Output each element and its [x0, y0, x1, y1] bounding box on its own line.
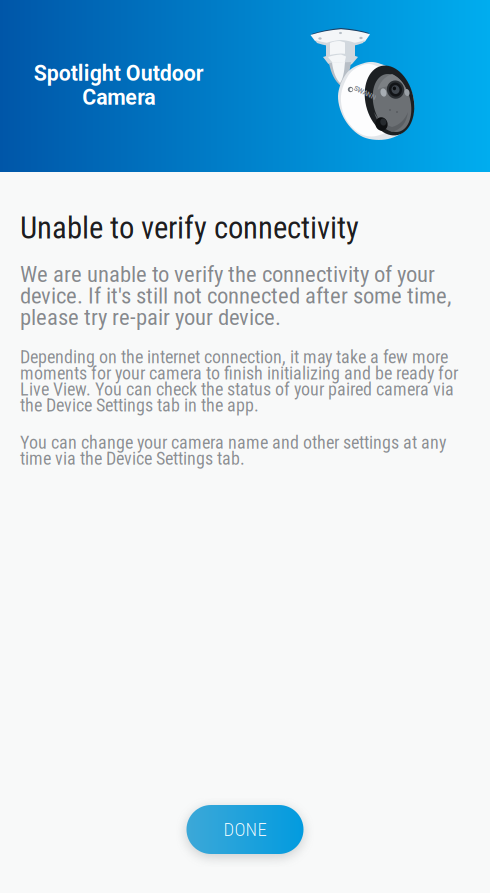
staticText: Unable to verify connectivity: [20, 210, 359, 246]
staticText: DONE: [223, 819, 266, 840]
staticText: We are unable to verify the connectivity…: [20, 261, 451, 331]
staticText: You can change your camera name and othe…: [20, 432, 446, 469]
button[interactable]: DONE: [186, 805, 303, 854]
staticText: SWANN: [353, 89, 377, 97]
staticText: Spotlight Outdoor Camera: [33, 61, 203, 110]
staticText: Depending on the internet connection, it…: [20, 347, 458, 416]
